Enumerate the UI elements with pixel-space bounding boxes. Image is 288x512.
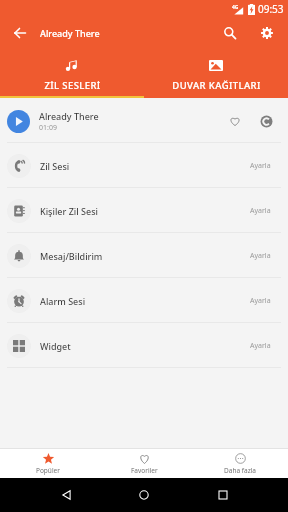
- button[interactable]: Already There: [0, 98, 288, 143]
- staticText: Daha fazla: [224, 466, 257, 475]
- staticText: Popüler: [36, 466, 60, 475]
- staticText: Zil Sesi: [40, 160, 70, 172]
- staticText: 09:53: [258, 2, 284, 16]
- staticText: Kişiler Zil Sesi: [40, 205, 98, 217]
- staticText: Already There: [39, 110, 99, 122]
- button[interactable]: Daha fazla: [192, 449, 288, 475]
- button[interactable]: ZİL SESLERİ: [0, 48, 144, 92]
- staticText: Mesaj/Bildirim: [40, 250, 103, 262]
- button[interactable]: Kişiler Zil Sesi: [0, 188, 288, 233]
- button[interactable]: Search: [217, 20, 243, 46]
- button[interactable]: Back: [53, 482, 79, 508]
- staticText: Ayarla: [250, 161, 271, 171]
- staticText: Ayarla: [250, 206, 271, 216]
- button[interactable]: Favoriler: [96, 449, 192, 475]
- button[interactable]: Mesaj/Bildirim: [0, 233, 288, 278]
- staticText: Widget: [40, 340, 71, 352]
- button[interactable]: Alarm Sesi: [0, 278, 288, 323]
- button[interactable]: Recents: [210, 482, 236, 508]
- button[interactable]: Back: [6, 19, 34, 47]
- button[interactable]: DUVAR KAĞITLARI: [144, 48, 288, 92]
- staticText: Favoriler: [131, 466, 158, 475]
- button[interactable]: Settings: [254, 20, 280, 46]
- staticText: ZİL SESLERİ: [44, 79, 101, 92]
- button[interactable]: Widget: [0, 323, 288, 368]
- staticText: Alarm Sesi: [40, 295, 86, 307]
- button[interactable]: Copyright: [253, 108, 279, 134]
- staticText: 01:09: [39, 123, 57, 133]
- button[interactable]: Popüler: [0, 449, 96, 475]
- button[interactable]: Zil Sesi: [0, 143, 288, 188]
- staticText: Already There: [40, 27, 100, 39]
- staticText: Ayarla: [250, 296, 271, 306]
- staticText: Ayarla: [250, 251, 271, 261]
- staticText: 4G: [232, 4, 239, 11]
- button[interactable]: Favorite: [222, 108, 248, 134]
- staticText: Ayarla: [250, 341, 271, 351]
- staticText: DUVAR KAĞITLARI: [172, 79, 261, 92]
- button[interactable]: Home: [131, 482, 157, 508]
